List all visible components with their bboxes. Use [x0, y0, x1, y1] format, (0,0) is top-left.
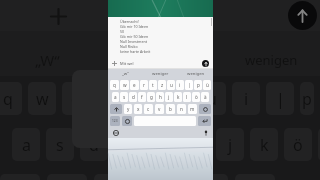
button[interactable]: t: [130, 82, 158, 115]
button[interactable]: h: [156, 92, 164, 102]
button[interactable]: p: [300, 82, 314, 115]
button[interactable]: q: [110, 80, 119, 90]
button[interactable]: „w“: [108, 69, 143, 79]
staticText: ö: [293, 134, 303, 156]
button[interactable]: Send: [288, 1, 317, 30]
staticText: 123: [112, 119, 118, 123]
button[interactable]: Numbers: [110, 116, 120, 126]
staticText: b: [169, 106, 172, 112]
staticText: j: [168, 94, 170, 100]
staticText: m: [190, 106, 195, 112]
staticText: Null Investment: [120, 39, 147, 44]
staticText: s: [123, 94, 126, 100]
button[interactable]: m: [188, 104, 197, 114]
button[interactable]: u: [167, 80, 175, 90]
staticText: „W“: [35, 50, 60, 70]
staticText: a: [114, 94, 117, 100]
button[interactable]: Shift: [110, 104, 122, 114]
button[interactable]: v: [155, 104, 164, 114]
staticText: y: [127, 106, 130, 112]
button[interactable]: x: [134, 104, 142, 114]
button[interactable]: f: [138, 92, 146, 102]
staticText: h: [191, 134, 201, 156]
button[interactable]: j: [165, 92, 173, 102]
button[interactable]: h: [182, 128, 210, 161]
staticText: q: [3, 88, 13, 110]
button[interactable]: Send message: [202, 60, 209, 67]
staticText: q: [113, 82, 116, 88]
button[interactable]: t: [149, 80, 157, 90]
staticText: l: [186, 94, 188, 100]
button[interactable]: y: [124, 104, 132, 114]
button[interactable]: Change keyboard: [111, 128, 120, 137]
button[interactable]: ä: [201, 92, 209, 102]
button[interactable]: a: [112, 92, 119, 102]
button[interactable]: f: [114, 128, 142, 161]
staticText: x: [137, 106, 140, 112]
button[interactable]: wenigen: [178, 69, 213, 79]
button[interactable]: Return: [198, 116, 211, 126]
button[interactable]: d: [80, 128, 108, 161]
staticText: t: [152, 82, 154, 88]
button[interactable]: Add attachment: [50, 8, 67, 25]
staticText: u: [207, 88, 217, 110]
button[interactable]: r: [96, 82, 124, 115]
staticText: d: [132, 94, 135, 100]
button[interactable]: w: [120, 80, 129, 90]
staticText: u: [170, 82, 173, 88]
staticText: e: [133, 82, 136, 88]
button[interactable]: e: [62, 82, 90, 115]
staticText: ü: [206, 82, 209, 88]
button[interactable]: z: [164, 82, 192, 115]
staticText: k: [260, 134, 269, 156]
button[interactable]: |: [185, 80, 193, 90]
button[interactable]: Add: [108, 59, 120, 68]
button[interactable]: p: [194, 80, 202, 90]
button[interactable]: Voice input: [201, 128, 210, 137]
staticText: Gib mir 50 Ideen: [120, 34, 149, 39]
button[interactable]: z: [158, 80, 166, 90]
button[interactable]: c: [144, 104, 153, 114]
button[interactable]: weniger: [143, 69, 178, 79]
staticText: v: [158, 106, 161, 112]
button[interactable]: ü: [203, 80, 211, 90]
button[interactable]: u: [198, 82, 226, 115]
staticText: |: [188, 82, 191, 88]
staticText: Gib mir 10 Ideen: [120, 24, 149, 29]
button[interactable]: l: [183, 92, 191, 102]
staticText: g: [150, 94, 153, 100]
staticText: 50: [120, 29, 125, 34]
button[interactable]: ö: [192, 92, 200, 102]
button[interactable]: w: [28, 82, 56, 115]
staticText: Null Risiko: [120, 44, 138, 49]
button[interactable]: r: [140, 80, 148, 90]
button[interactable]: d: [129, 92, 137, 102]
button[interactable]: s: [120, 92, 128, 102]
button[interactable]: ö: [284, 128, 312, 161]
button[interactable]: q: [0, 82, 22, 115]
staticText: Mit wel: [120, 7, 165, 25]
staticText: p: [302, 88, 312, 110]
button[interactable]: g: [147, 92, 155, 102]
button[interactable]: k: [174, 92, 182, 102]
button[interactable]: g: [148, 128, 176, 161]
staticText: ä: [204, 94, 207, 100]
button[interactable]: Emoji: [122, 116, 132, 126]
button[interactable]: n: [177, 104, 186, 114]
button[interactable]: b: [166, 104, 175, 114]
staticText: wenigen: [245, 51, 298, 69]
button[interactable]: Backspace: [199, 104, 211, 114]
button[interactable]: i: [176, 80, 184, 90]
staticText: r: [107, 88, 114, 110]
staticText: f: [141, 94, 143, 100]
button[interactable]: e: [130, 80, 139, 90]
